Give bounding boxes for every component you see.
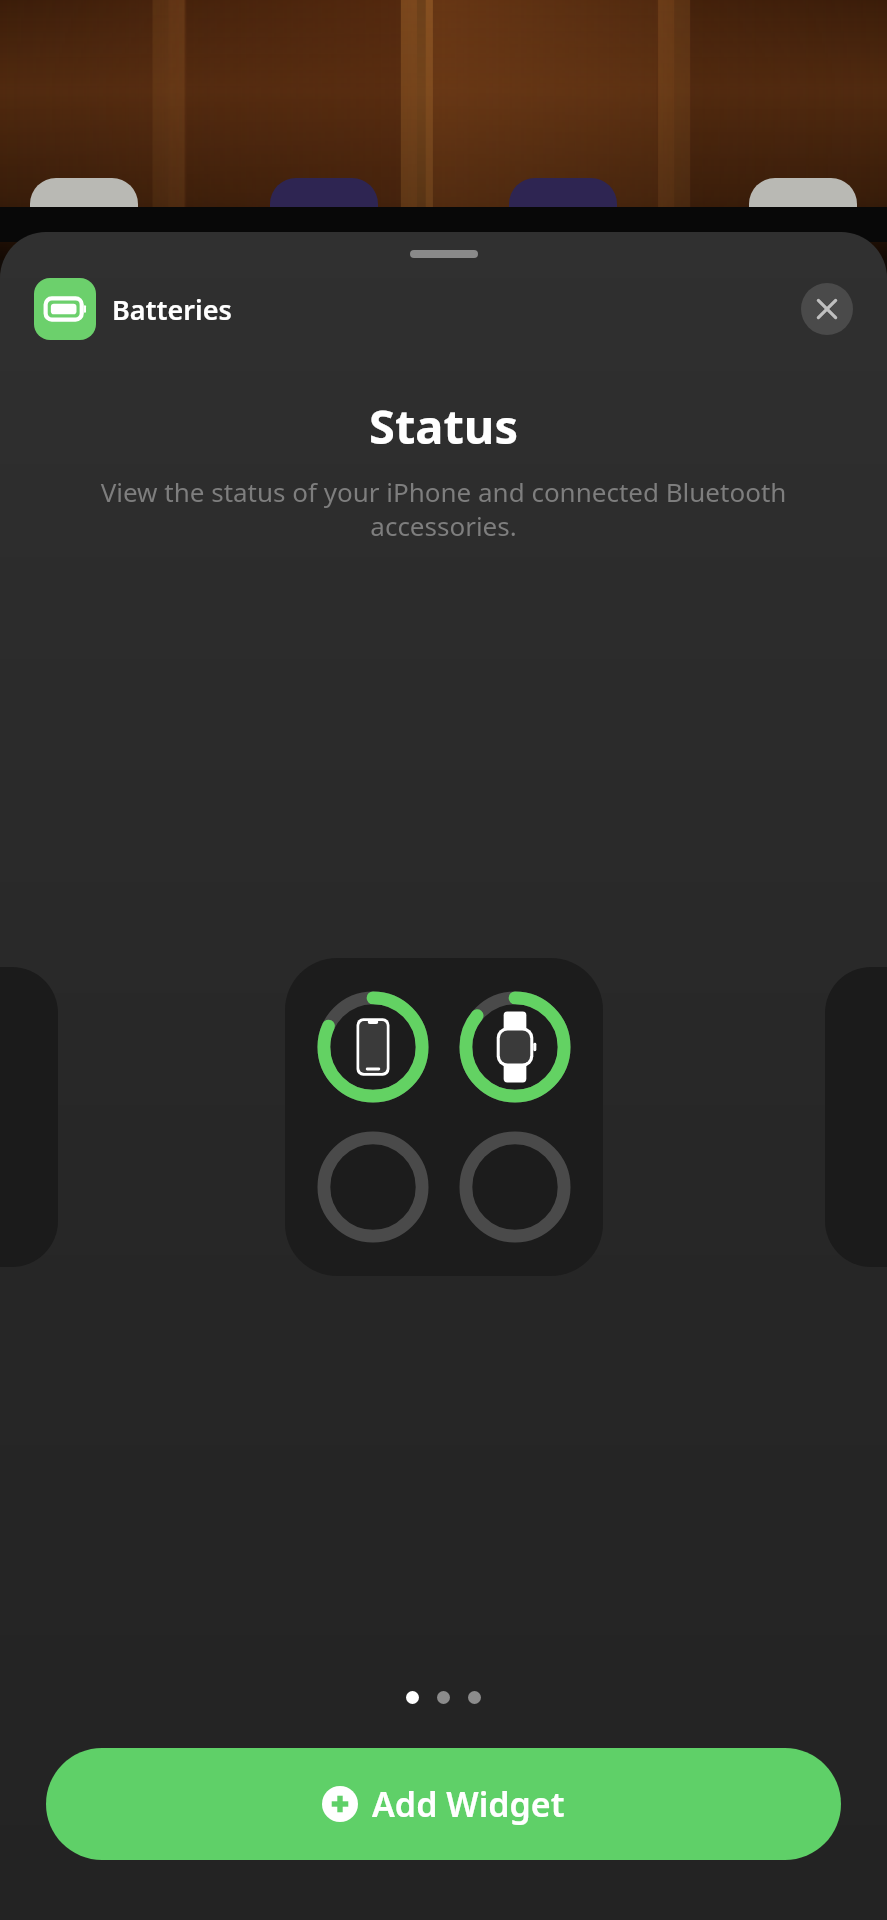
button[interactable]: Add Widget	[46, 1748, 841, 1860]
button[interactable]	[509, 178, 617, 258]
button[interactable]: Batteries	[34, 278, 232, 340]
button[interactable]	[285, 958, 603, 1276]
staticText: Status	[369, 394, 518, 458]
button[interactable]: Close	[801, 283, 853, 335]
button[interactable]	[437, 1691, 450, 1704]
staticText: Batteries	[112, 291, 232, 328]
staticText: View the status of your iPhone and conne…	[34, 474, 853, 543]
button[interactable]	[270, 178, 378, 258]
button[interactable]	[406, 1691, 419, 1704]
button[interactable]	[468, 1691, 481, 1704]
button[interactable]	[749, 178, 857, 258]
staticText: Add Widget	[372, 1781, 565, 1827]
button[interactable]	[30, 178, 138, 258]
